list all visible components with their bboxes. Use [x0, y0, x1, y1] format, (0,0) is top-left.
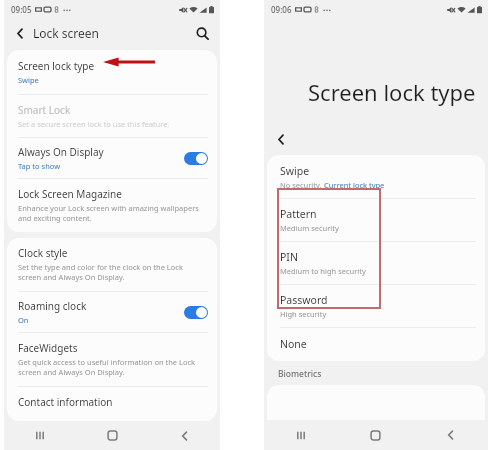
- button[interactable]: Pattern: [267, 199, 485, 241]
- button[interactable]: Back: [413, 420, 488, 450]
- button[interactable]: FaceWidgets: [7, 333, 217, 386]
- staticText: Screen lock type: [308, 77, 476, 107]
- button[interactable]: Roaming clock: [7, 292, 217, 332]
- staticText: Tap to show: [18, 161, 61, 171]
- staticText: Get quick access to useful information o…: [18, 357, 196, 367]
- staticText: None: [280, 337, 307, 351]
- staticText: Clock style: [18, 246, 68, 260]
- staticText: screen and Always On Display.: [18, 367, 125, 377]
- button[interactable]: Home: [338, 420, 413, 450]
- staticText: Lock screen: [33, 25, 100, 41]
- staticText: On: [18, 315, 29, 325]
- staticText: FaceWidgets: [18, 341, 78, 355]
- button[interactable]: Lock Screen Magazine: [7, 179, 217, 232]
- staticText: Always On Display: [18, 145, 104, 159]
- staticText: Pattern: [280, 207, 317, 221]
- button[interactable]: Always On Display: [7, 138, 217, 178]
- staticText: Swipe: [18, 75, 39, 85]
- button[interactable]: Back: [272, 131, 289, 148]
- button[interactable]: Clock style: [7, 238, 217, 291]
- staticText: 09:05: [11, 4, 32, 15]
- staticText: and exciting content.: [18, 213, 92, 223]
- button[interactable]: Smart Lock: [7, 95, 217, 137]
- staticText: Medium to high security: [280, 266, 366, 276]
- staticText: Enhance your Lock screen with amazing wa…: [18, 203, 199, 213]
- button[interactable]: PIN: [267, 242, 485, 284]
- staticText: Lock Screen Magazine: [18, 187, 122, 201]
- button[interactable]: Password: [267, 285, 485, 327]
- button[interactable]: Screen lock type: [7, 50, 217, 94]
- staticText: Set the type and color for the clock on …: [18, 262, 183, 272]
- button[interactable]: Recents: [4, 421, 76, 450]
- staticText: Password: [280, 293, 328, 307]
- staticText: High security: [280, 309, 327, 319]
- staticText: Roaming clock: [18, 299, 87, 313]
- staticText: 09:06: [271, 4, 292, 15]
- staticText: Medium security: [280, 223, 339, 233]
- staticText: PIN: [280, 250, 298, 264]
- staticText: No security,: [280, 180, 324, 190]
- staticText: Current lock type: [324, 180, 385, 190]
- button[interactable]: Swipe: [267, 155, 485, 198]
- button[interactable]: Contact information: [7, 387, 217, 419]
- button[interactable]: Recents: [264, 420, 338, 450]
- button[interactable]: Search: [193, 24, 211, 42]
- staticText: Set a secure screen lock to use this fea…: [18, 119, 170, 129]
- staticText: Swipe: [280, 164, 310, 178]
- button[interactable]: Home: [76, 421, 148, 450]
- staticText: Smart Lock: [18, 103, 71, 117]
- button[interactable]: Back: [148, 421, 220, 450]
- staticText: screen and Always On Display.: [18, 272, 125, 282]
- staticText: Screen lock type: [18, 59, 95, 73]
- staticText: Contact information: [18, 395, 113, 409]
- staticText: Biometrics: [278, 368, 322, 380]
- button[interactable]: None: [267, 328, 485, 361]
- button[interactable]: Back: [12, 25, 28, 41]
